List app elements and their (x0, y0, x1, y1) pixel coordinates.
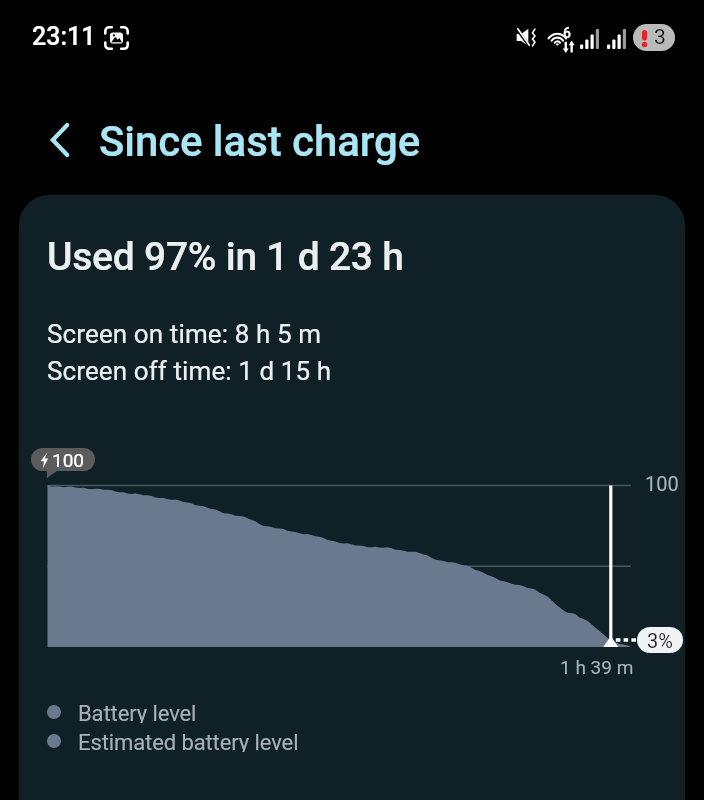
button[interactable]: Back (36, 116, 84, 164)
staticText: 3% (647, 629, 673, 652)
staticText: 6 (563, 25, 571, 41)
staticText: Battery level (78, 701, 197, 723)
staticText: 1 h 39 m (560, 656, 634, 678)
staticText: Screen on time: 8 h 5 m (47, 319, 322, 349)
staticText: 100 (52, 449, 85, 471)
staticText: Since last charge (99, 117, 421, 166)
button[interactable]: Estimated battery level (47, 730, 299, 752)
button[interactable]: Battery usage since last charge (19, 195, 685, 800)
staticText: 3 (654, 25, 666, 50)
button[interactable]: Battery level (47, 701, 197, 723)
staticText: Screen off time: 1 d 15 h (47, 356, 332, 386)
staticText: 100 (645, 472, 679, 495)
staticText: Used 97% in 1 d 23 h (47, 234, 404, 280)
staticText: Estimated battery level (78, 730, 299, 752)
staticText: 23:11 (32, 22, 96, 51)
